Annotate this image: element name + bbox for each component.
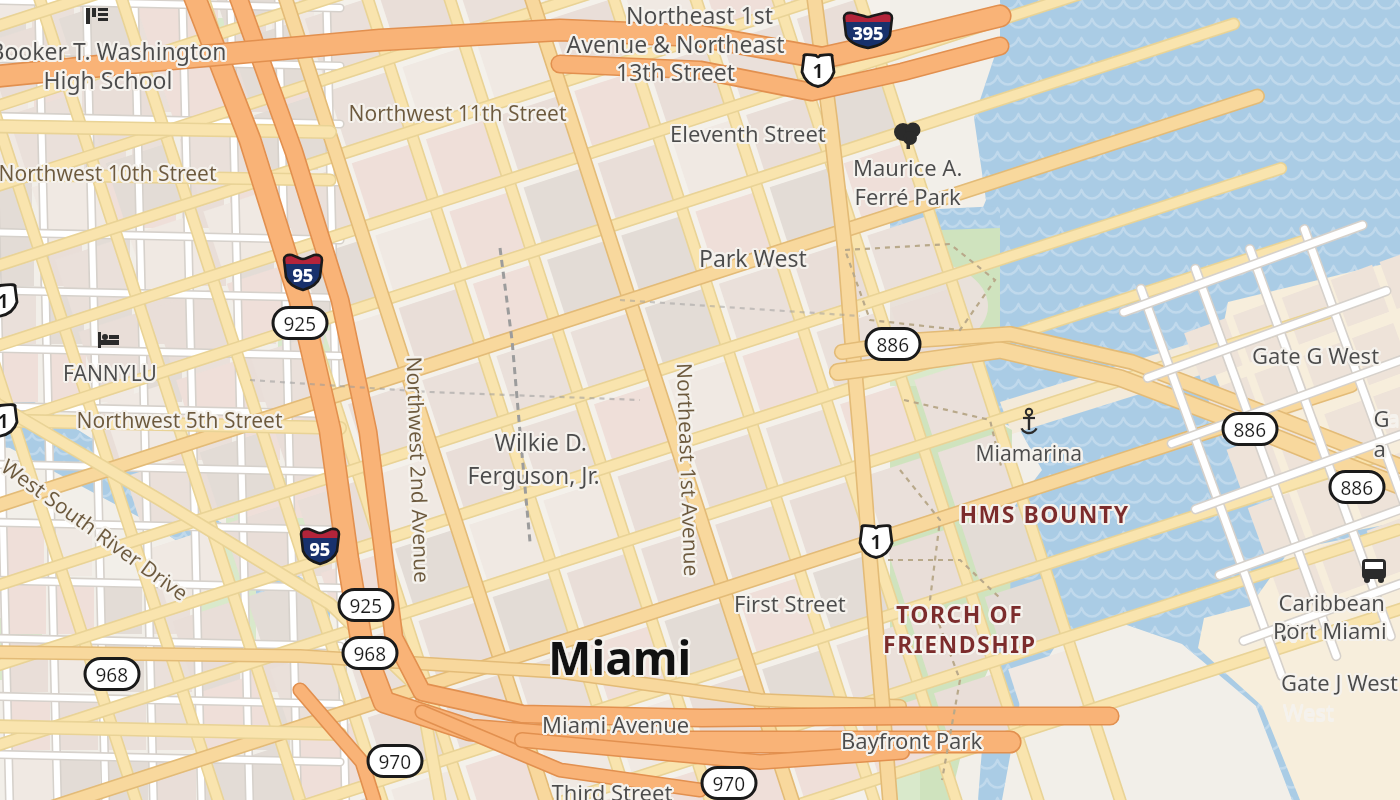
button[interactable]: Map of downtown Miami	[0, 0, 1400, 800]
